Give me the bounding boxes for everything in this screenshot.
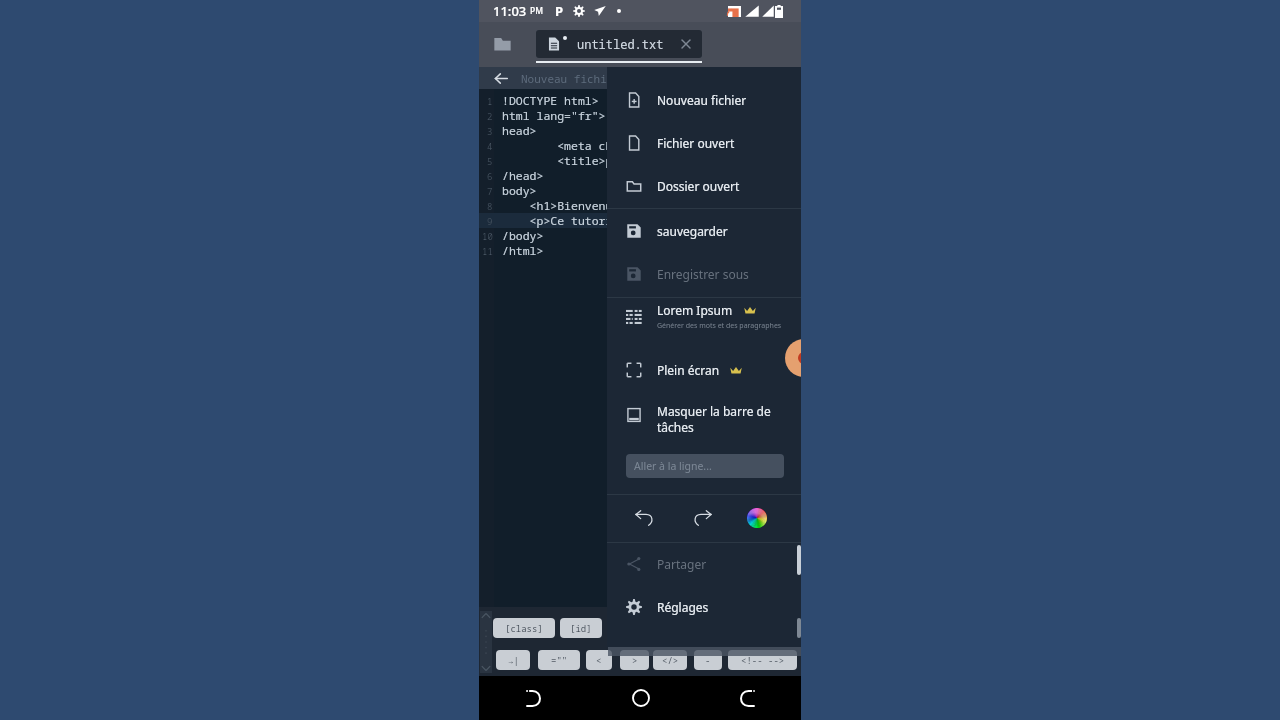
button[interactable]: Nouveau fichier xyxy=(607,79,801,121)
button[interactable]: > xyxy=(620,650,649,670)
button[interactable]: Enregistrer sous xyxy=(607,253,801,295)
staticText: 11:03 xyxy=(493,2,527,20)
button[interactable]: Theme colour xyxy=(742,503,772,533)
staticText: 11 xyxy=(482,245,493,257)
staticText: Aller à la ligne... xyxy=(634,459,712,473)
button[interactable]: Back xyxy=(479,676,587,720)
button[interactable]: [class] xyxy=(493,618,555,638)
staticText: Nouveau fichier xyxy=(521,71,620,86)
button[interactable]: Lorem Ipsum xyxy=(607,302,801,342)
staticText: Lorem Ipsum xyxy=(657,302,733,318)
staticText: </> xyxy=(662,654,679,666)
button[interactable]: Redo xyxy=(684,500,720,536)
staticText: - xyxy=(705,654,711,666)
staticText: 9 xyxy=(487,215,493,227)
staticText: <!-- --> xyxy=(741,654,785,666)
staticText: Partager xyxy=(657,556,707,572)
staticText: 5 xyxy=(487,155,493,167)
button[interactable]: Fichier ouvert xyxy=(607,122,801,164)
staticText: > xyxy=(632,654,638,666)
staticText: Enregistrer sous xyxy=(657,266,749,282)
button[interactable]: [id] xyxy=(560,618,602,638)
staticText: Réglages xyxy=(657,599,709,615)
button[interactable]: Close tab xyxy=(677,35,695,53)
button[interactable]: Home xyxy=(587,676,694,720)
staticText: <title>page</title> xyxy=(502,153,689,168)
staticText: <h1>Bienvenue</h1> xyxy=(502,198,654,213)
button[interactable]: < xyxy=(586,650,612,670)
staticText: [class] xyxy=(505,622,543,634)
staticText: sauvegarder xyxy=(657,223,728,239)
staticText: 3 xyxy=(487,125,493,137)
staticText: <p>Ce tutoriel vous xyxy=(502,213,661,228)
button[interactable]: File browser xyxy=(492,34,512,54)
staticText: Nouveau fichier xyxy=(657,92,747,108)
staticText: Plein écran xyxy=(657,362,720,378)
button[interactable]: Masquer la barre de xyxy=(607,403,801,447)
staticText: PM xyxy=(530,5,543,17)
button[interactable]: Back xyxy=(492,69,510,87)
button[interactable]: sauvegarder xyxy=(607,210,801,252)
staticText: !DOCTYPE html> xyxy=(502,93,599,108)
staticText: 10 xyxy=(482,230,493,242)
staticText: 6 xyxy=(487,170,493,182)
staticText: Générer des mots et des paragraphes xyxy=(657,321,782,331)
staticText: 1 xyxy=(487,95,493,107)
button[interactable]: Dossier ouvert xyxy=(607,165,801,207)
button[interactable]: <!-- --> xyxy=(728,650,797,670)
staticText: <meta charset="utf-8"> xyxy=(502,138,709,153)
staticText: ="" xyxy=(551,654,568,666)
staticText: →| xyxy=(508,654,519,666)
button[interactable]: Recent apps xyxy=(694,676,801,720)
staticText: 7 xyxy=(487,185,493,197)
button[interactable]: Réglages xyxy=(607,586,801,628)
staticText: 8 xyxy=(487,200,493,212)
button[interactable]: </> xyxy=(653,650,687,670)
staticText: 2 xyxy=(487,110,493,122)
button[interactable]: ="" xyxy=(538,650,580,670)
button[interactable]: Partager xyxy=(607,543,801,585)
staticText: tâches xyxy=(657,419,694,435)
staticText: html lang="fr"> xyxy=(502,108,606,123)
staticText: /body> xyxy=(502,228,544,243)
staticText: body> xyxy=(502,183,537,198)
button[interactable]: untitled.txt xyxy=(536,30,702,58)
button[interactable]: →| xyxy=(496,650,530,670)
button[interactable]: Undo xyxy=(626,500,662,536)
staticText: /head> xyxy=(502,168,544,183)
staticText: < xyxy=(596,654,602,666)
staticText: P xyxy=(555,2,564,20)
staticText: Dossier ouvert xyxy=(657,178,740,194)
staticText: /html> xyxy=(502,243,544,258)
staticText: Masquer la barre de xyxy=(657,403,771,419)
staticText: Fichier ouvert xyxy=(657,135,735,151)
button[interactable]: Resize toolbar xyxy=(480,611,492,673)
button[interactable]: Record xyxy=(785,339,801,377)
button[interactable]: - xyxy=(694,650,722,670)
staticText: 4 xyxy=(487,140,493,152)
staticText: untitled.txt xyxy=(577,36,664,52)
staticText: [id] xyxy=(570,622,592,634)
button[interactable]: Plein écran xyxy=(607,349,801,391)
button[interactable]: Aller à la ligne... xyxy=(626,454,784,478)
staticText: head> xyxy=(502,123,537,138)
